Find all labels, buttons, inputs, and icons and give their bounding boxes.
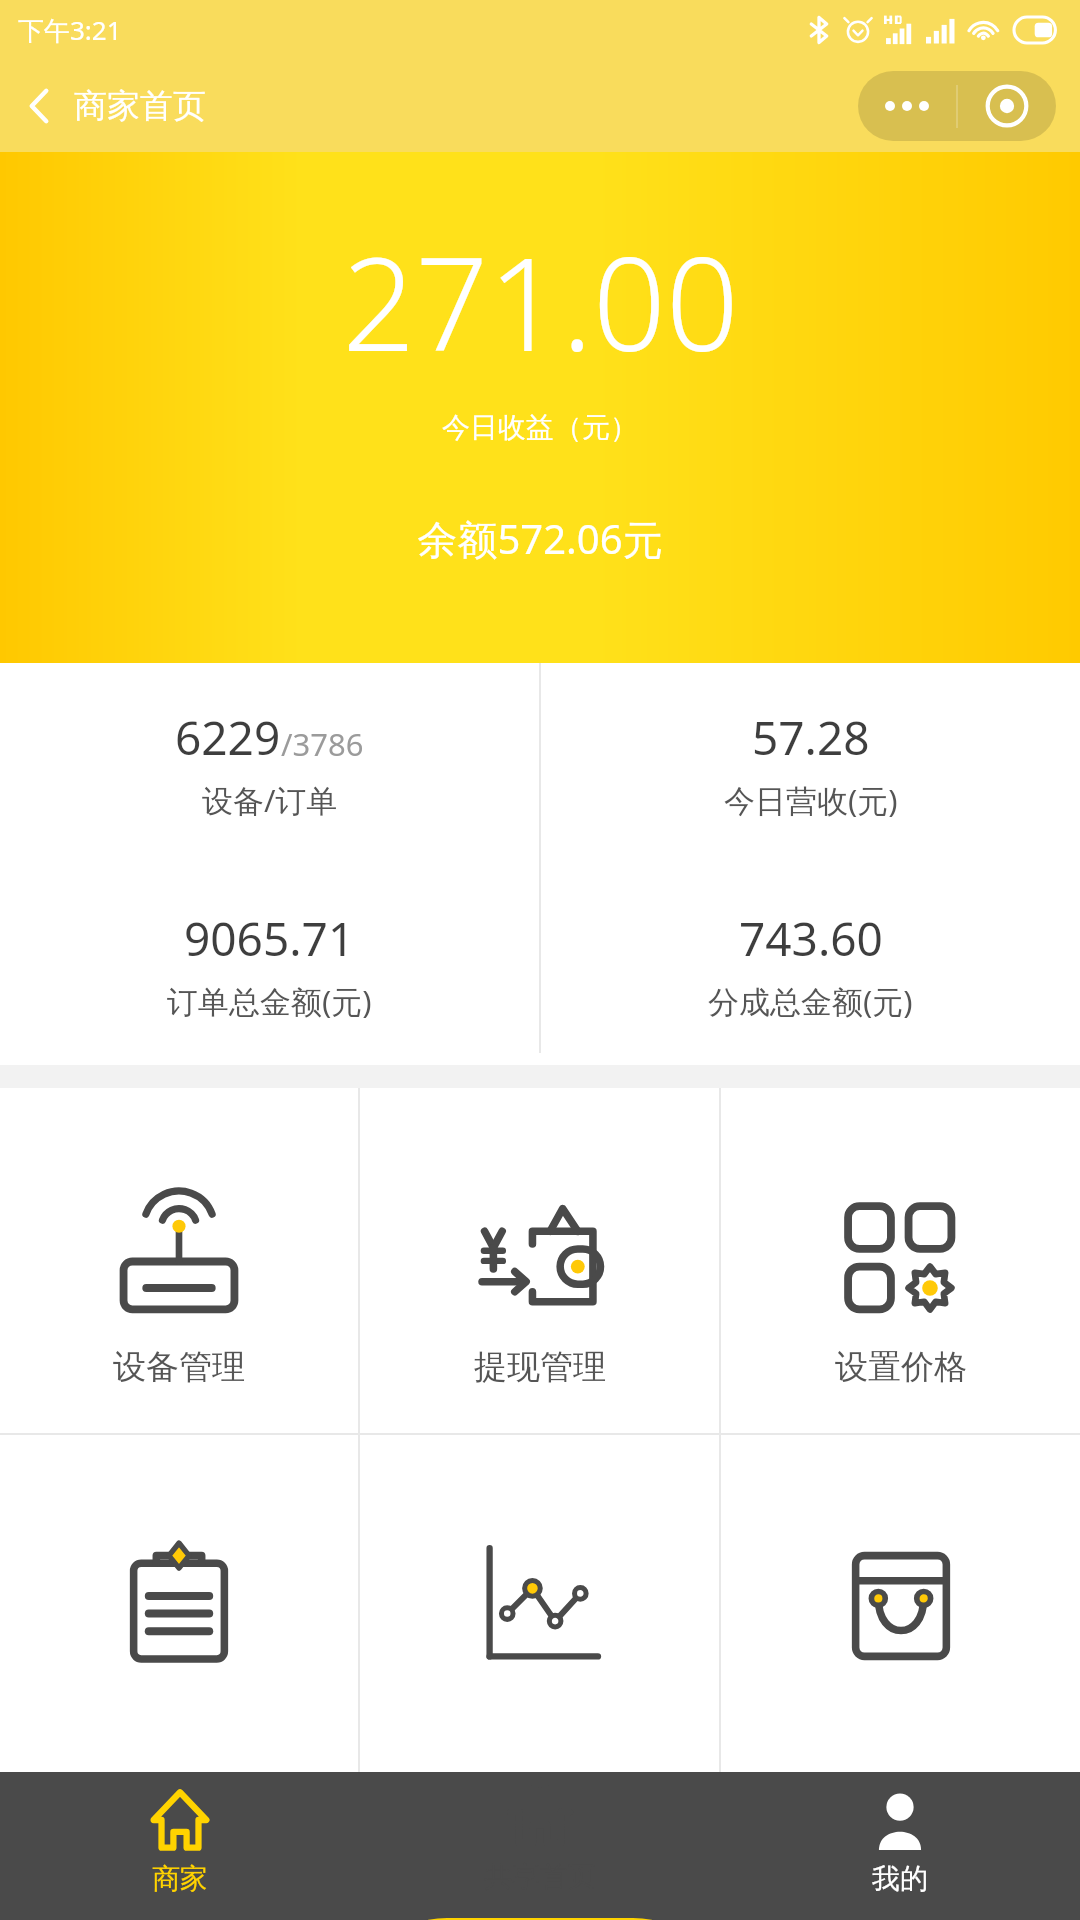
button[interactable] — [721, 1435, 1080, 1780]
button[interactable] — [0, 1435, 358, 1780]
button[interactable]: 57.28 — [541, 663, 1080, 864]
staticText: /3786 — [281, 723, 364, 765]
button[interactable]: 共享首页 — [360, 1730, 720, 1920]
button[interactable]: More options — [858, 71, 956, 141]
button[interactable]: 设置价格 — [721, 1088, 1080, 1433]
staticText: 57.28 — [752, 706, 870, 769]
button[interactable]: 743.60 — [541, 864, 1080, 1065]
staticText: 271.00 — [342, 214, 739, 388]
staticText: 订单总金额(元) — [167, 980, 372, 1022]
staticText: 今日收益（元） — [442, 410, 638, 445]
staticText: 商家 — [152, 1861, 208, 1896]
other: Back — [26, 86, 52, 126]
staticText: 今日营收(元) — [724, 779, 898, 821]
staticText: 余额572.06元 — [417, 511, 663, 566]
staticText: 设置价格 — [835, 1346, 967, 1388]
button[interactable]: 9065.71 — [0, 864, 539, 1065]
staticText: 我的 — [872, 1861, 928, 1896]
button[interactable]: 提现管理 — [360, 1088, 719, 1433]
button[interactable]: Close — [958, 71, 1056, 141]
staticText: 设备/订单 — [202, 779, 338, 821]
button[interactable] — [360, 1435, 719, 1780]
button[interactable]: 设备管理 — [0, 1088, 358, 1433]
staticText: 743.60 — [739, 907, 883, 970]
staticText: 9065.71 — [184, 907, 355, 970]
staticText: 下午3:21 — [18, 12, 122, 48]
button[interactable]: 我的 — [720, 1730, 1080, 1920]
button[interactable]: 6229 — [0, 663, 539, 864]
button[interactable]: 商家 — [0, 1730, 360, 1920]
staticText: 设备管理 — [113, 1346, 245, 1388]
staticText: 商家首页 — [74, 85, 206, 127]
staticText: 提现管理 — [474, 1346, 606, 1388]
staticText: 分成总金额(元) — [708, 980, 913, 1022]
staticText: 6229 — [175, 706, 281, 769]
button[interactable]: Back — [8, 75, 224, 137]
